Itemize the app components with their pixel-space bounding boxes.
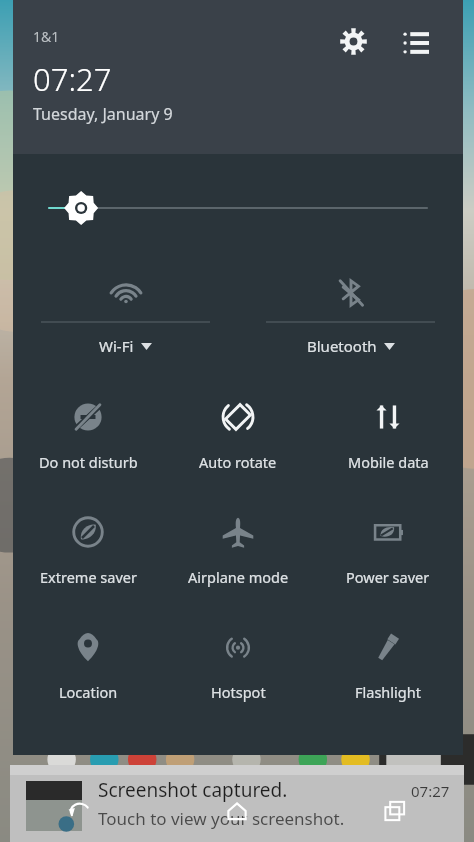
- button[interactable]: Settings: [332, 20, 374, 62]
- button[interactable]: Recent apps: [316, 780, 474, 842]
- button[interactable]: Flashlight: [313, 610, 463, 725]
- staticText: Flashlight: [355, 682, 421, 702]
- staticText: Touch to view your screenshot.: [98, 807, 345, 830]
- staticText: Power saver: [346, 567, 430, 587]
- staticText: Auto rotate: [199, 452, 277, 472]
- staticText: 07:27: [411, 781, 450, 801]
- button[interactable]: Back: [0, 780, 158, 842]
- button[interactable]: Auto rotate: [163, 380, 313, 495]
- button[interactable]: Wi-Fi: [13, 262, 238, 380]
- button[interactable]: Bluetooth: [238, 262, 463, 380]
- staticText: Wi-Fi: [99, 336, 134, 356]
- staticText: Do not disturb: [39, 452, 138, 472]
- staticText: Mobile data: [348, 452, 429, 472]
- button[interactable]: Do not disturb: [13, 380, 163, 495]
- staticText: Screenshot captured.: [98, 777, 288, 803]
- staticText: Hotspot: [211, 682, 266, 702]
- button[interactable]: Edit order: [395, 20, 437, 62]
- staticText: Extreme saver: [40, 567, 137, 587]
- button[interactable]: Location: [13, 610, 163, 725]
- button[interactable]: Mobile data: [313, 380, 463, 495]
- staticText: Location: [59, 682, 118, 702]
- button[interactable]: Home: [158, 780, 316, 842]
- button[interactable]: Power saver: [313, 495, 463, 610]
- staticText: Airplane mode: [188, 567, 289, 587]
- button[interactable]: Hotspot: [163, 610, 313, 725]
- button[interactable]: Extreme saver: [13, 495, 163, 610]
- staticText: Tuesday, January 9: [33, 103, 173, 125]
- staticText: 1&1: [33, 27, 60, 46]
- button[interactable]: Brightness: [13, 154, 463, 262]
- staticText: Bluetooth: [307, 336, 377, 356]
- staticText: 07:27: [33, 58, 112, 100]
- button[interactable]: Airplane mode: [163, 495, 313, 610]
- button[interactable]: Screenshot captured.: [10, 765, 464, 842]
